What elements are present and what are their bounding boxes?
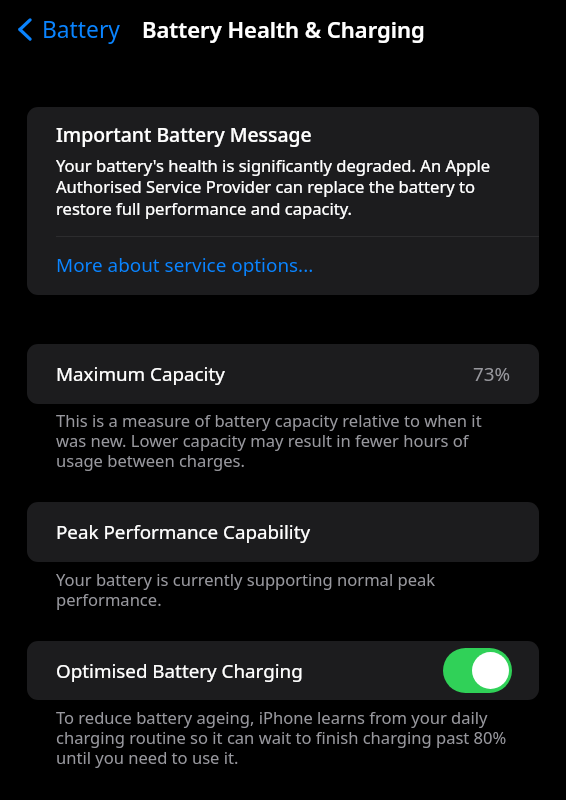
staticText: Important Battery Message (56, 121, 312, 147)
button[interactable]: More about service options... (27, 237, 539, 295)
button[interactable]: Maximum Capacity (27, 344, 539, 404)
staticText: 73% (473, 361, 511, 387)
button[interactable]: Back to Battery (0, 8, 130, 51)
staticText: This is a measure of battery capacity re… (56, 409, 514, 471)
button[interactable]: Peak Performance Capability (27, 502, 539, 562)
staticText: Battery Health & Charging (142, 14, 425, 44)
staticText: Battery (42, 14, 120, 45)
staticText: More about service options... (56, 252, 314, 278)
staticText: To reduce battery ageing, iPhone learns … (56, 706, 514, 768)
button[interactable]: Optimised Battery Charging, on (443, 648, 512, 693)
staticText: Your battery's health is significantly d… (56, 154, 509, 220)
staticText: Your battery is currently supporting nor… (56, 568, 514, 610)
button[interactable]: Optimised Battery Charging (27, 641, 539, 700)
staticText: Peak Performance Capability (56, 519, 311, 545)
staticText: Optimised Battery Charging (56, 658, 303, 684)
other: Back to Battery (18, 18, 31, 41)
staticText: Maximum Capacity (56, 361, 225, 387)
